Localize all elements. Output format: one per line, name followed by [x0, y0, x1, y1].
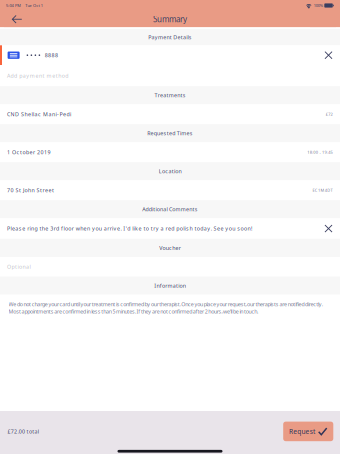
staticText: CND Shellac Mani-Pedi [7, 111, 71, 118]
button[interactable]: Add payment method [0, 65, 340, 86]
staticText: Optional [7, 263, 30, 270]
staticText: Requested Times [147, 130, 193, 137]
staticText: 5:04 PM [6, 3, 21, 8]
staticText: 8888 [45, 52, 58, 59]
staticText: 1 October 2019 [7, 149, 50, 156]
staticText: 18:00 - 19:45 [307, 149, 332, 155]
staticText: Location [159, 168, 181, 175]
staticText: Add payment method [7, 72, 68, 79]
staticText: Voucher [159, 244, 181, 251]
staticText: Payment Details [148, 34, 192, 41]
button[interactable]: 8888 [0, 45, 340, 65]
staticText: Information [154, 282, 186, 289]
staticText: Additional Comments [142, 206, 198, 213]
staticText: Request [289, 427, 315, 436]
button[interactable]: Back [4, 11, 30, 27]
staticText: Please ring the 3rd floor when you arriv… [7, 225, 252, 232]
staticText: £72.00 total [7, 428, 39, 435]
staticText: 70 St John Street [7, 187, 54, 194]
staticText: EC1M4DT [312, 187, 332, 193]
staticText: Summary [153, 14, 187, 24]
button[interactable]: Request [283, 422, 333, 441]
staticText: We do not charge your card until your tr… [8, 301, 323, 315]
button[interactable]: Please ring the 3rd floor when you arriv… [0, 218, 340, 239]
staticText: Tue Oct 1 [25, 3, 43, 8]
staticText: £72 [326, 111, 332, 117]
staticText: Treatments [154, 92, 186, 99]
staticText: 100% [314, 3, 323, 8]
